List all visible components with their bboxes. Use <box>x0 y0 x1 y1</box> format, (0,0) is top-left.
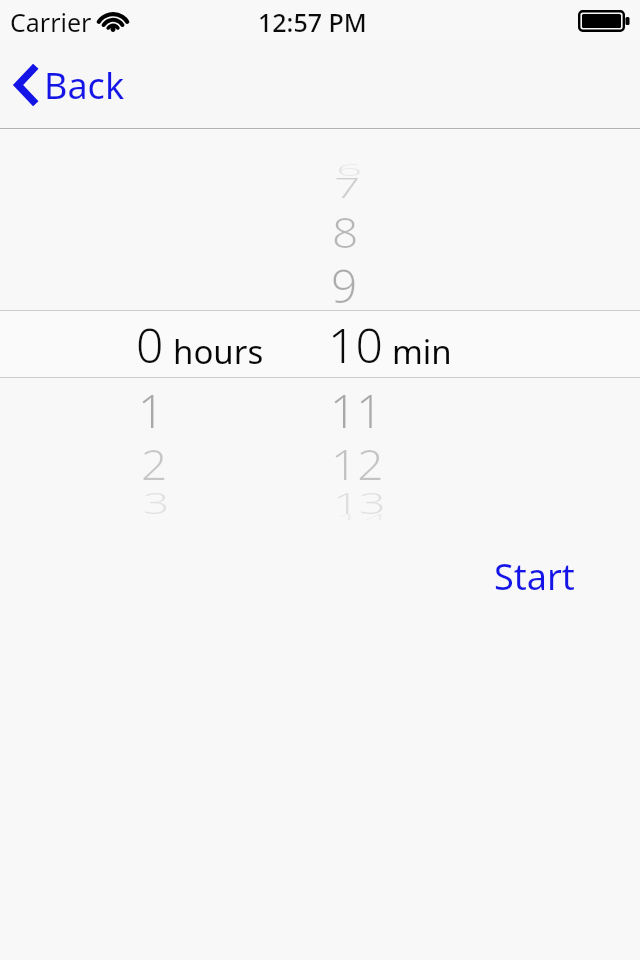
staticText: hours <box>173 329 264 374</box>
staticText: 2 <box>141 435 168 485</box>
staticText: 7 <box>334 169 361 201</box>
staticText: 10 <box>328 312 383 377</box>
staticText: 3 <box>143 483 170 517</box>
button[interactable]: Back <box>8 58 131 112</box>
staticText: 0 <box>136 312 164 377</box>
staticText: Start <box>494 552 575 601</box>
staticText: 11 <box>330 379 383 433</box>
staticText: Carrier <box>10 5 92 39</box>
button[interactable]: 1 <box>0 130 640 520</box>
staticText: Back <box>44 61 125 110</box>
staticText: 9 <box>331 254 358 308</box>
staticText: 6 <box>336 159 363 177</box>
staticText: 8 <box>332 203 359 253</box>
staticText: 13 <box>333 483 386 517</box>
staticText: 12 <box>331 435 384 485</box>
button[interactable]: Start <box>482 544 587 609</box>
staticText: min <box>392 329 452 374</box>
staticText: 12:57 PM <box>258 5 367 39</box>
staticText: 1 <box>138 379 165 433</box>
staticText: 14 <box>335 509 388 520</box>
